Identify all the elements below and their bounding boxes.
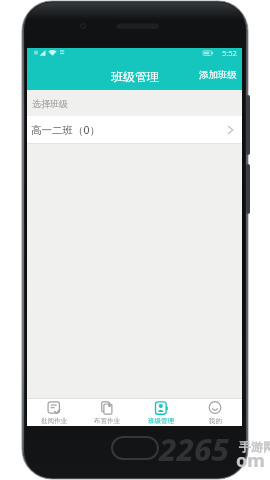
staticText: 手游网 — [239, 439, 270, 454]
staticText: 高一二班（0） — [31, 123, 101, 137]
staticText: 班级管理 — [148, 417, 174, 425]
button[interactable]: 批阅作业 — [27, 399, 80, 426]
staticText: 班级管理 — [111, 69, 159, 84]
button[interactable]: 布置作业 — [80, 399, 134, 426]
staticText: 批阅作业 — [41, 417, 67, 425]
staticText: 添加班级 — [199, 69, 237, 81]
staticText: 5:52 — [222, 48, 237, 58]
staticText: 布置作业 — [94, 417, 120, 425]
button[interactable]: 班级管理 — [134, 399, 188, 426]
staticText: om — [236, 448, 265, 473]
button[interactable]: 我的 — [188, 399, 242, 426]
button[interactable]: 添加班级 — [199, 58, 242, 90]
staticText: 选择班级 — [32, 98, 68, 109]
staticText: 2265 — [159, 428, 229, 470]
button[interactable]: 高一二班（0） — [27, 116, 242, 143]
staticText: 我的 — [209, 417, 222, 425]
